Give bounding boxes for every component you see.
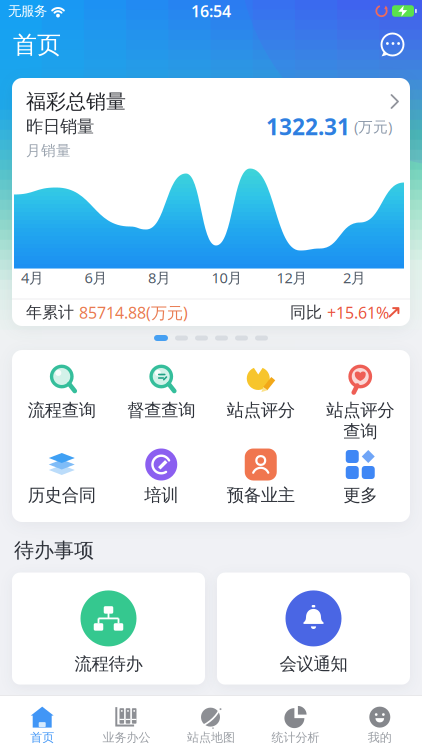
staticText: 培训	[144, 484, 178, 506]
staticText: 站点评分	[227, 399, 295, 421]
button[interactable]: 更多	[310, 447, 410, 517]
button[interactable]: 业务办公	[84, 696, 169, 748]
staticText: 8月	[148, 268, 171, 287]
staticText: 首页	[30, 730, 54, 745]
staticText: 流程查询	[28, 399, 96, 421]
staticText: 4月	[21, 268, 44, 287]
staticText: 85714.88(万元)	[79, 302, 188, 323]
button[interactable]: 会议通知	[217, 573, 410, 685]
staticText: 福彩总销量	[26, 89, 126, 114]
staticText: 昨日销量	[26, 116, 94, 137]
staticText: 无服务	[8, 3, 47, 19]
staticText: 首页	[13, 30, 61, 60]
staticText: 流程待办	[74, 653, 142, 675]
staticText: 12月	[276, 268, 307, 287]
staticText: 站点评分	[326, 399, 394, 421]
button[interactable]: 历史合同	[12, 447, 111, 517]
staticText: 我的	[368, 730, 392, 745]
button[interactable]: 福彩总销量	[12, 78, 410, 326]
staticText: 更多	[343, 484, 377, 506]
staticText: 6月	[84, 268, 107, 287]
button[interactable]: 流程查询	[12, 362, 111, 447]
button[interactable]: 培训	[111, 447, 211, 517]
button[interactable]: 督查查询	[111, 362, 211, 447]
button[interactable]: 站点地图	[169, 696, 253, 748]
button[interactable]: 站点评分	[211, 362, 310, 447]
button[interactable]: 统计分析	[253, 696, 338, 748]
button[interactable]: 流程待办	[12, 573, 205, 685]
staticText: +15.61%	[327, 302, 389, 323]
staticText: 业务办公	[103, 730, 151, 745]
staticText: 预备业主	[227, 484, 295, 506]
staticText: 查询	[343, 421, 377, 442]
button[interactable]: 首页	[0, 696, 84, 748]
staticText: 16:54	[191, 0, 231, 22]
staticText: 统计分析	[271, 730, 319, 745]
staticText: 待办事项	[14, 538, 94, 563]
staticText: 1322.31	[266, 111, 350, 141]
staticText: 站点地图	[187, 730, 235, 745]
staticText: 同比	[290, 303, 327, 322]
staticText: 年累计	[26, 303, 79, 322]
staticText: 月销量	[26, 141, 71, 159]
button[interactable]: 我的	[338, 696, 422, 748]
staticText: 2月	[343, 268, 366, 287]
staticText: 10月	[211, 268, 242, 287]
button[interactable]: 站点评分	[310, 362, 410, 447]
staticText: 督查查询	[127, 399, 195, 421]
button[interactable]: 预备业主	[211, 447, 310, 517]
staticText: (万元)	[350, 117, 392, 136]
staticText: 会议通知	[279, 653, 347, 675]
staticText: 历史合同	[28, 484, 96, 506]
button[interactable]: 消息	[378, 32, 407, 58]
